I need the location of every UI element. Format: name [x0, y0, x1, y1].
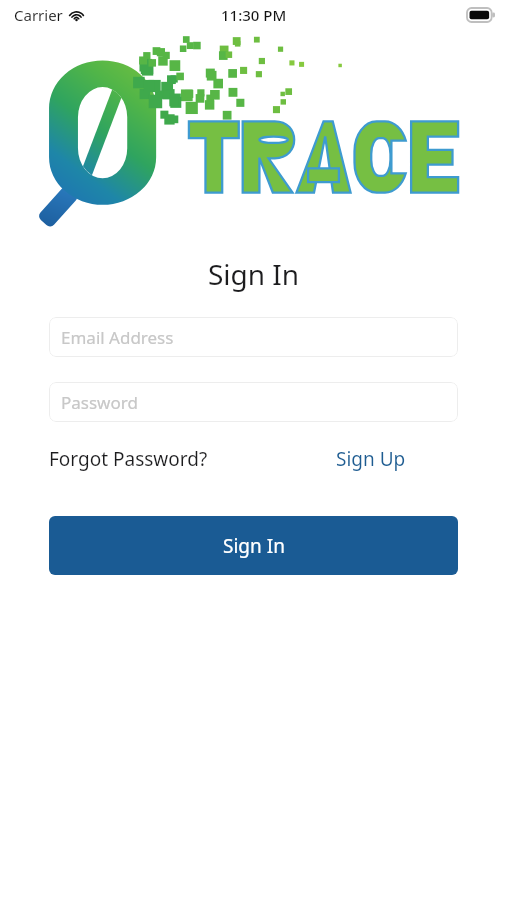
staticText: Email Address	[61, 326, 174, 349]
staticText: Sign Up	[336, 446, 406, 472]
staticText: Sign In	[223, 533, 285, 559]
staticText: Carrier	[14, 5, 63, 25]
staticText: Forgot Password?	[49, 446, 208, 472]
staticText: Password	[61, 391, 138, 414]
button[interactable]: Forgot Password?	[49, 443, 208, 475]
staticText: Sign In	[0, 255, 507, 293]
button[interactable]: Password	[49, 382, 458, 422]
button[interactable]: Sign In	[49, 516, 458, 575]
button[interactable]: Email Address	[49, 317, 458, 357]
staticText: 11:30 PM	[221, 5, 287, 25]
button[interactable]: Sign Up	[336, 443, 406, 475]
